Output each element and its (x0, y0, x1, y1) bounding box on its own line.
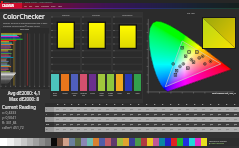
staticText: Moderate Red (80, 92, 87, 96)
staticText: Pt (202, 104, 204, 106)
staticText: 0,00 (70, 109, 73, 111)
staticText: Pt (154, 104, 156, 106)
staticText: R: 331,84 (2, 120, 17, 125)
button[interactable]: Orange Yellow (107, 74, 114, 99)
staticText: 0,00 (170, 124, 173, 126)
staticText: 0,00 (70, 129, 73, 131)
staticText: 0,00 (234, 114, 237, 116)
staticText: 0,00 (138, 109, 141, 111)
staticText: 0,00 (98, 114, 101, 116)
staticText: 0,00 (70, 124, 73, 126)
staticText: 0,00 (77, 109, 80, 111)
button[interactable]: Workflow (40, 5, 50, 7)
staticText: x: 0,4333 (2, 110, 17, 115)
button[interactable]: Purple (89, 74, 96, 99)
staticText: 0,00 (210, 119, 213, 121)
staticText: 0,00 (178, 109, 181, 111)
staticText: 0,00 (130, 109, 133, 111)
staticText: 0,00 (56, 129, 59, 131)
staticText: Max dE2000: 8 (0, 96, 48, 102)
staticText: 0,00 (84, 119, 87, 121)
staticText: 0,00 (234, 124, 237, 126)
staticText: Purple (89, 92, 96, 94)
staticText: 0,00 (170, 109, 173, 111)
staticText: 0,00 (194, 129, 197, 131)
button[interactable]: Yellow (116, 74, 123, 99)
staticText: Pt (85, 104, 87, 106)
staticText: y: 0,5041 (2, 115, 17, 120)
staticText: 0,00 (63, 114, 66, 116)
button[interactable]: Help (57, 5, 63, 7)
staticText: Pt (170, 104, 172, 106)
staticText: 0,00 (146, 124, 149, 126)
button[interactable]: File (23, 5, 28, 7)
button[interactable]: Orange (61, 74, 69, 99)
staticText: 0,00 (162, 114, 165, 116)
button[interactable]: Edit (28, 5, 34, 7)
staticText: 0,00 (122, 114, 125, 116)
staticText: 0,00 (130, 124, 133, 126)
staticText: SpectraCal C6 HDR2000 (209, 140, 227, 142)
button[interactable]: View (34, 5, 40, 7)
button[interactable]: Purplish Blue (71, 74, 78, 99)
button[interactable]: Green (134, 74, 141, 99)
staticText: 0,00 (56, 109, 59, 111)
staticText: 0,00 (98, 119, 101, 121)
button[interactable]: Blue (125, 74, 132, 99)
staticText: 0,00 (154, 129, 157, 131)
staticText: Pt (99, 104, 101, 106)
staticText: 0,00 (226, 124, 229, 126)
staticText: 0,00 (84, 124, 87, 126)
button[interactable]: Moderate Red (80, 74, 87, 99)
staticText: 0,00 (63, 109, 66, 111)
staticText: 0,00 (84, 114, 87, 116)
staticText: 0,00 (234, 129, 237, 131)
button[interactable]: Bluish Green (51, 74, 59, 99)
staticText: Pantone ColorChecker® target colors (3, 25, 40, 28)
staticText: 0,00 (218, 109, 221, 111)
staticText: 0,00 (218, 124, 221, 126)
staticText: 0,00 (114, 109, 117, 111)
button[interactable]: Yellow Green (98, 74, 105, 99)
staticText: 0,00 (210, 114, 213, 116)
staticText: 0,00 (114, 119, 117, 121)
staticText: Blue (125, 92, 132, 94)
staticText: y (46, 114, 47, 116)
button[interactable]: Tools (50, 5, 57, 7)
staticText: 0,00 (77, 129, 80, 131)
